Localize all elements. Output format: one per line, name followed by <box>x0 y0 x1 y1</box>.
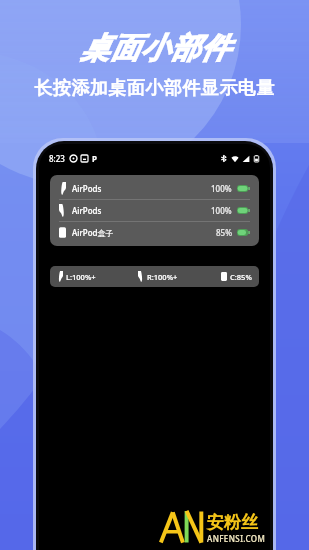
button[interactable]: L:100%+ <box>50 266 259 287</box>
button[interactable]: AirPods <box>59 178 250 199</box>
staticText: R:100%+ <box>147 272 178 282</box>
button[interactable]: AirPods <box>59 200 250 221</box>
staticText: 安粉丝 <box>207 512 258 533</box>
button[interactable]: L:100%+ <box>57 271 96 282</box>
staticText: AirPod盒子 <box>72 227 114 238</box>
staticText: AirPods <box>72 205 102 216</box>
button[interactable]: R:100%+ <box>138 271 178 282</box>
staticText: 85% <box>216 227 232 238</box>
staticText: ANFENSI.COM <box>207 533 266 544</box>
staticText: 100% <box>211 183 232 194</box>
staticText: 8:23 <box>49 153 65 164</box>
staticText: AirPods <box>72 183 102 194</box>
staticText: 桌面小部件 <box>80 30 230 67</box>
staticText: 100% <box>211 205 232 216</box>
button[interactable]: C:85% <box>221 271 252 282</box>
staticText: P <box>92 153 97 164</box>
staticText: L:100%+ <box>66 272 96 282</box>
staticText: C:85% <box>230 272 252 282</box>
button[interactable]: AirPod盒子 <box>59 222 250 243</box>
button[interactable]: AirPods <box>50 175 259 246</box>
staticText: 长按添加桌面小部件显示电量 <box>34 77 275 100</box>
